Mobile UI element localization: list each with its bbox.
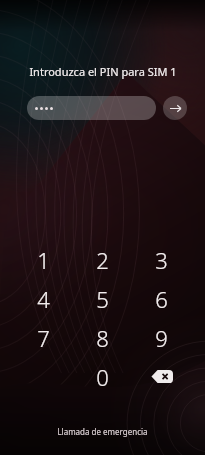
staticText: 7	[37, 323, 50, 353]
button[interactable]: 9	[132, 318, 191, 357]
button[interactable]: 1	[14, 240, 73, 279]
button[interactable]: 7	[14, 318, 73, 357]
button[interactable]: 2	[73, 240, 132, 279]
button[interactable]: Llamada de emergencia	[47, 422, 158, 441]
button[interactable]: Borrar	[132, 357, 191, 396]
staticText: 6	[155, 284, 168, 314]
staticText: Llamada de emergencia	[57, 426, 148, 437]
button[interactable]: 3	[132, 240, 191, 279]
button[interactable]: 0	[73, 357, 132, 396]
staticText: 2	[96, 245, 109, 275]
staticText: 8	[96, 323, 109, 353]
button[interactable]: Aceptar	[163, 96, 187, 120]
staticText: 9	[155, 323, 168, 353]
staticText: 0	[96, 362, 109, 392]
button[interactable]: 6	[132, 279, 191, 318]
button[interactable]	[27, 96, 156, 120]
staticText: Introduzca el PIN para SIM 1	[29, 64, 177, 79]
button[interactable]: 8	[73, 318, 132, 357]
staticText: 1	[37, 245, 50, 275]
staticText: 4	[37, 284, 50, 314]
button[interactable]: 4	[14, 279, 73, 318]
staticText: 5	[96, 284, 109, 314]
staticText: 3	[155, 245, 168, 275]
button[interactable]: 5	[73, 279, 132, 318]
